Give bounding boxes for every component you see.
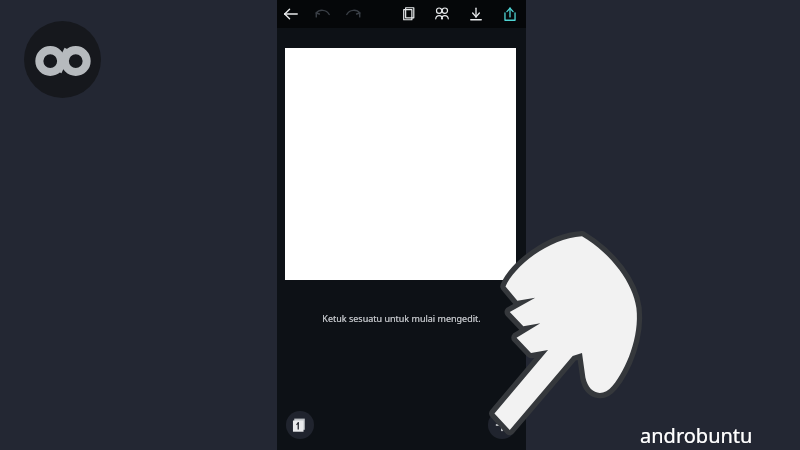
button[interactable]: Collaborators [430, 2, 454, 26]
button[interactable]: Duplicate [397, 2, 421, 26]
staticText: androbuntu [640, 422, 753, 449]
button[interactable]: Add [488, 411, 516, 439]
staticText: Ketuk sesuatu untuk mulai mengedit. [322, 312, 481, 324]
button[interactable]: Download [464, 2, 488, 26]
button[interactable]: Back [279, 2, 303, 26]
button[interactable]: Redo [341, 2, 365, 26]
button[interactable]: Pages [286, 411, 314, 439]
button[interactable]: Undo [311, 2, 335, 26]
button[interactable]: Share [498, 2, 522, 26]
button[interactable] [285, 48, 516, 280]
